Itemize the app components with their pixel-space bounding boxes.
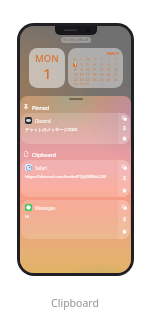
staticText: 5 (100, 62, 103, 67)
staticText: Clipboard (32, 151, 56, 158)
staticText: 15 (73, 72, 78, 77)
staticText: 9:41 Mon, Mar 28 (63, 38, 89, 42)
staticText: 20 (106, 72, 111, 77)
button[interactable]: Messages (21, 200, 130, 239)
staticText: 28 (113, 77, 118, 82)
staticText: 3 (86, 62, 89, 67)
button[interactable]: MON (29, 48, 65, 88)
button[interactable]: Copy (120, 163, 129, 172)
staticText: 25 (92, 77, 97, 82)
staticText: MON (35, 52, 59, 65)
staticText: 19 (99, 72, 104, 77)
button[interactable]: Pin (120, 215, 129, 224)
staticText: 24 (85, 77, 90, 82)
staticText: F (101, 57, 103, 62)
staticText: https://discord.com/invite/PQkJGDBsLCW (25, 174, 106, 180)
staticText: 8 (74, 67, 77, 72)
staticText: 12 (99, 67, 104, 72)
staticText: Messages (35, 205, 56, 211)
staticText: 22 (73, 77, 78, 82)
staticText: チャットのメッセージ2023 (25, 127, 78, 133)
staticText: 4 (93, 62, 96, 67)
staticText: 6 (107, 62, 110, 67)
staticText: S (108, 57, 110, 62)
staticText: T (94, 57, 96, 62)
button[interactable]: MARCH (68, 48, 123, 88)
staticText: M (73, 57, 77, 62)
button[interactable]: Pin (120, 174, 129, 183)
staticText: 23 (79, 77, 84, 82)
staticText: 2 (80, 62, 83, 67)
staticText: 14 (113, 67, 118, 72)
staticText: 18 (92, 72, 97, 77)
button[interactable]: Copy (120, 114, 129, 123)
button[interactable]: Delete (120, 134, 129, 143)
staticText: 10 (85, 67, 90, 72)
staticText: W (86, 57, 90, 62)
staticText: 1 (43, 63, 52, 83)
staticText: 11 (92, 67, 97, 72)
staticText: 21 (113, 72, 118, 77)
staticText: 16 (79, 72, 84, 77)
staticText: 17 (85, 72, 90, 77)
staticText: S (115, 57, 117, 62)
staticText: MARCH (72, 51, 119, 56)
staticText: 31 (85, 82, 90, 85)
staticText: T (80, 57, 82, 62)
button[interactable]: Discord (21, 113, 130, 144)
button[interactable]: Copy (120, 203, 129, 212)
button[interactable]: Safari (21, 160, 130, 197)
staticText: Safari (35, 165, 47, 171)
staticText: 13 (106, 67, 111, 72)
staticText: 9 (80, 67, 83, 72)
staticText: Hi (25, 214, 30, 220)
button[interactable]: Pin (120, 124, 129, 133)
button[interactable]: Delete (120, 186, 129, 195)
staticText: 7 (114, 62, 117, 67)
staticText: 26 (99, 77, 104, 82)
staticText: Pinned (32, 104, 50, 111)
staticText: 27 (106, 77, 111, 82)
staticText: 1 (74, 62, 77, 67)
staticText: 29 (73, 82, 78, 85)
button[interactable]: Delete (120, 227, 129, 236)
staticText: Clipboard (0, 296, 150, 310)
staticText: Discord (35, 118, 51, 124)
staticText: 30 (79, 82, 84, 85)
